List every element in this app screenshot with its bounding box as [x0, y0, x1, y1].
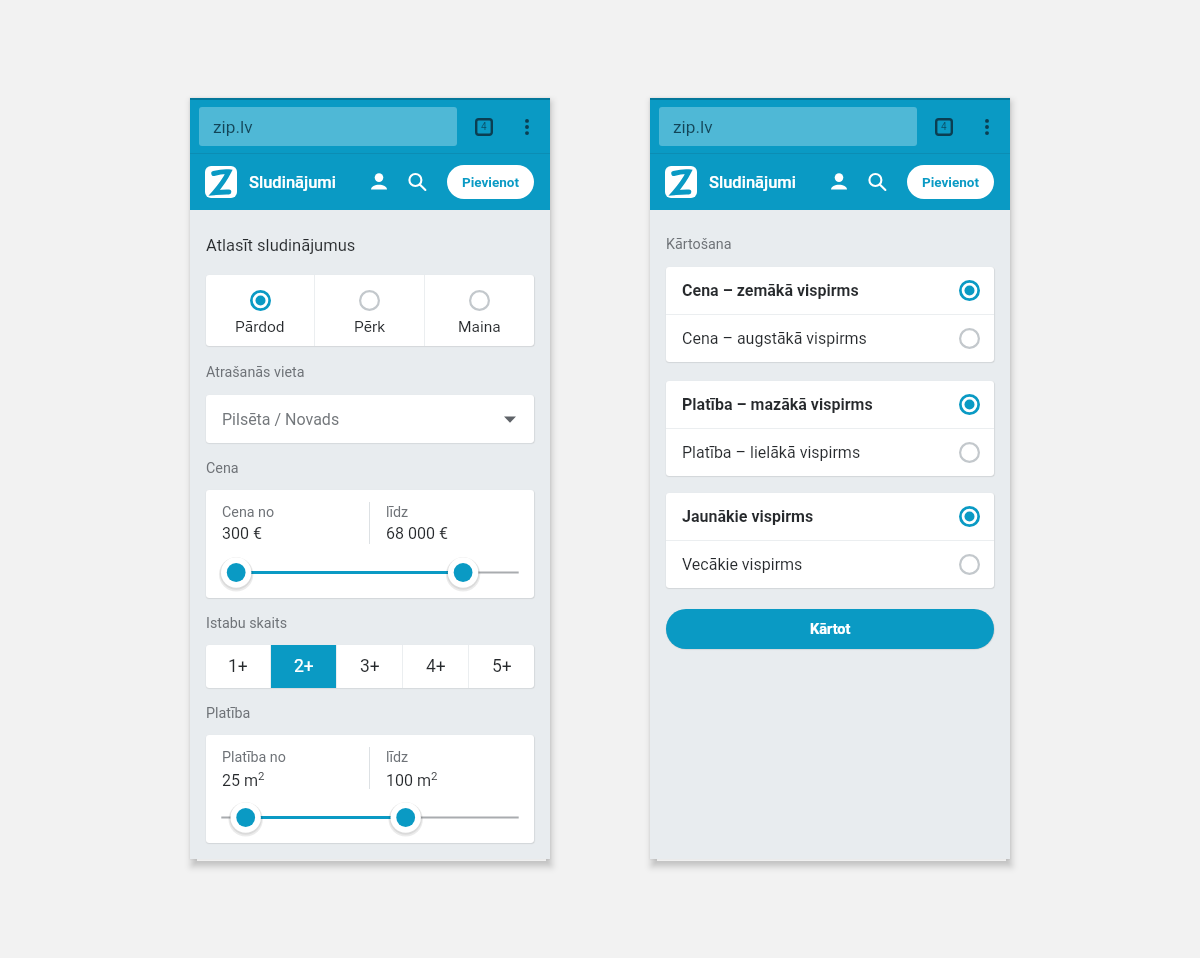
staticText: Sludinājumi [709, 173, 796, 192]
button[interactable]: Pārdod [206, 275, 314, 346]
staticText: 25 m2 [222, 769, 265, 790]
button[interactable]: 3+ [337, 645, 402, 688]
staticText: līdz [386, 504, 409, 521]
button[interactable]: Platība – mazākā vispirms [666, 381, 994, 428]
button[interactable]: Pievienot [907, 165, 994, 199]
staticText: Kārtot [810, 621, 851, 638]
staticText: Platība no [222, 749, 286, 766]
button[interactable]: 2+ [271, 645, 336, 688]
button[interactable]: Cena – augstākā vispirms [666, 315, 994, 362]
staticText: Platība [206, 705, 251, 722]
staticText: Cena [206, 460, 239, 477]
staticText: Cena – zemākā vispirms [682, 281, 859, 300]
staticText: 2+ [294, 656, 314, 677]
button[interactable]: Vecākie vispirms [666, 541, 994, 588]
staticText: zip.lv [213, 117, 253, 137]
button[interactable]: Maina [425, 275, 534, 346]
button[interactable]: Pievienot [447, 165, 534, 199]
button[interactable]: Tabs, 4 open [469, 112, 499, 142]
staticText: Vecākie vispirms [682, 555, 803, 574]
button[interactable]: Jaunākie vispirms [666, 493, 994, 540]
staticText: Maina [458, 318, 501, 336]
staticText: Platība – mazākā vispirms [682, 395, 873, 414]
staticText: līdz [386, 749, 409, 766]
staticText: 4+ [426, 656, 446, 677]
button[interactable]: Search [861, 166, 893, 198]
staticText: Pievienot [462, 174, 519, 190]
button[interactable]: 1+ [206, 645, 270, 688]
button[interactable]: zip.lv home [665, 166, 697, 198]
button[interactable]: Tabs, 4 open [929, 112, 959, 142]
staticText: 3+ [360, 656, 380, 677]
button[interactable]: Pērk [315, 275, 424, 346]
button[interactable]: zip.lv [199, 107, 457, 146]
staticText: Atlasīt sludinājumus [206, 236, 356, 255]
button[interactable]: Kārtot [666, 609, 994, 649]
staticText: Pievienot [922, 174, 979, 190]
staticText: Pilsēta / Novads [222, 410, 340, 429]
staticText: Atrašanās vieta [206, 364, 305, 381]
staticText: zip.lv [673, 117, 713, 137]
staticText: Jaunākie vispirms [682, 507, 814, 526]
staticText: 4 [941, 121, 947, 133]
staticText: 100 m2 [386, 769, 438, 790]
button[interactable]: Profile [823, 166, 855, 198]
button[interactable]: Profile [363, 166, 395, 198]
staticText: Cena – augstākā vispirms [682, 329, 867, 348]
staticText: Sludinājumi [249, 173, 336, 192]
button[interactable]: Platība – lielākā vispirms [666, 429, 994, 476]
staticText: 1+ [228, 656, 248, 677]
button[interactable]: 5+ [469, 645, 534, 688]
button[interactable]: Search [401, 166, 433, 198]
staticText: Cena no [222, 504, 275, 521]
staticText: Kārtošana [666, 236, 732, 253]
staticText: 68 000 € [386, 524, 448, 543]
staticText: Pērk [354, 318, 386, 336]
button[interactable]: More options [512, 112, 542, 142]
staticText: 5+ [492, 656, 512, 677]
staticText: 4 [481, 121, 487, 133]
staticText: Pārdod [235, 318, 285, 336]
button[interactable] [206, 556, 534, 598]
button[interactable]: Pilsēta / Novads [206, 395, 534, 443]
button[interactable]: More options [972, 112, 1002, 142]
staticText: 300 € [222, 524, 262, 543]
button[interactable]: Cena – zemākā vispirms [666, 267, 994, 314]
button[interactable]: zip.lv home [205, 166, 237, 198]
button[interactable] [206, 801, 534, 843]
button[interactable]: 4+ [403, 645, 468, 688]
staticText: Istabu skaits [206, 615, 288, 632]
staticText: Platība – lielākā vispirms [682, 443, 861, 462]
button[interactable]: zip.lv [659, 107, 917, 146]
